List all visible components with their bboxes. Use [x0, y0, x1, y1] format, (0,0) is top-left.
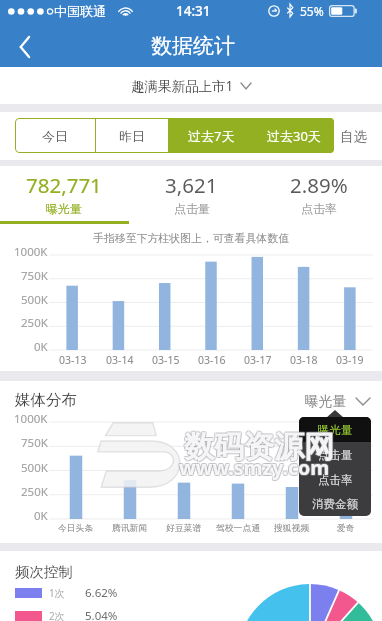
staticText: 03-16	[198, 353, 226, 367]
staticText: 点击量	[174, 201, 210, 216]
button[interactable]: 今日	[15, 118, 95, 153]
staticText: 1000K	[14, 411, 48, 427]
button[interactable]: 2.89%	[255, 166, 382, 221]
staticText: 爱奇	[337, 523, 355, 534]
staticText: 250K	[21, 484, 48, 500]
staticText: 6.62%	[85, 585, 118, 601]
staticText: 趣满果新品上市1	[131, 77, 234, 95]
staticText: 曝光量	[318, 423, 353, 437]
staticText: 数码资源网	[185, 428, 335, 466]
staticText: 3,621	[165, 171, 218, 199]
staticText: www.smzy.com	[178, 454, 329, 481]
staticText: 0K	[34, 508, 48, 524]
button[interactable]: 自选	[340, 112, 367, 160]
staticText: 03-15	[152, 353, 180, 367]
button[interactable]: 过去7天	[169, 118, 253, 153]
staticText: www.smzy.com	[180, 455, 331, 482]
staticText: 数码资源网	[184, 428, 334, 466]
staticText: 2.89%	[290, 171, 348, 199]
button[interactable]: 点击率	[299, 467, 371, 492]
staticText: 782,771	[26, 171, 102, 199]
staticText: 03-14	[106, 353, 134, 367]
button[interactable]: 过去30天	[254, 118, 334, 153]
staticText: 驾校一点通	[216, 523, 260, 534]
staticText: www.smzy.com	[179, 454, 330, 481]
staticText: 14:31	[176, 2, 211, 20]
staticText: 频次控制	[15, 563, 73, 581]
staticText: www.smzy.com	[180, 454, 331, 481]
staticText: 数码资源网	[184, 429, 334, 467]
button[interactable]: 782,771	[0, 166, 128, 221]
staticText: 曝光量	[46, 201, 82, 216]
staticText: 腾讯新闻	[112, 523, 148, 534]
staticText: 手指移至下方柱状图上，可查看具体数值	[0, 232, 382, 246]
staticText: 数码资源网	[183, 428, 333, 466]
staticText: 5.04%	[85, 608, 118, 621]
staticText: 点击率	[301, 201, 337, 216]
staticText: 点击量	[318, 448, 353, 462]
staticText: www.smzy.com	[180, 453, 331, 480]
staticText: 数码资源网	[185, 429, 335, 467]
staticText: 03-17	[244, 353, 272, 367]
staticText: www.smzy.com	[178, 453, 329, 480]
staticText: 搜狐视频	[274, 523, 310, 534]
staticText: 好豆菜谱	[166, 523, 202, 534]
staticText: 数码资源网	[185, 427, 335, 465]
staticText: www.smzy.com	[178, 455, 329, 482]
staticText: www.smzy.com	[179, 453, 330, 480]
staticText: 500K	[21, 292, 48, 308]
staticText: 今日	[42, 128, 68, 144]
staticText: 2次	[49, 609, 65, 621]
button[interactable]: 点击量	[299, 442, 371, 467]
button[interactable]: 趣满果新品上市1	[123, 73, 259, 99]
staticText: 数码资源网	[184, 427, 334, 465]
staticText: 过去7天	[188, 127, 235, 145]
staticText: 03-19	[336, 353, 364, 367]
staticText: 中国联通	[54, 3, 106, 19]
button[interactable]: 3,621	[128, 166, 255, 221]
button[interactable]: 消费金额	[299, 492, 371, 516]
staticText: www.smzy.com	[179, 455, 330, 482]
staticText: 消费金额	[312, 497, 358, 511]
staticText: 过去30天	[267, 127, 321, 145]
staticText: 点击率	[318, 473, 353, 487]
button[interactable]: Back	[0, 27, 48, 67]
button[interactable]: 曝光量	[299, 417, 371, 442]
staticText: 750K	[21, 435, 48, 451]
staticText: 500K	[21, 460, 48, 476]
staticText: 数码资源网	[183, 427, 333, 465]
staticText: 今日头条	[58, 523, 94, 534]
staticText: 0K	[34, 339, 48, 355]
staticText: 数据统计	[151, 33, 235, 59]
staticText: 1次	[49, 586, 65, 600]
staticText: 媒体分布	[15, 390, 77, 410]
staticText: 03-13	[59, 353, 87, 367]
staticText: 1000K	[14, 244, 48, 260]
button[interactable]: 昨日	[96, 118, 168, 153]
staticText: 曝光量	[305, 393, 347, 410]
staticText: 55%	[300, 3, 324, 19]
button[interactable]: 曝光量	[305, 390, 370, 413]
staticText: 750K	[21, 268, 48, 284]
staticText: 03-18	[290, 353, 318, 367]
staticText: 数码资源网	[183, 429, 333, 467]
staticText: 昨日	[119, 128, 145, 144]
staticText: 自选	[340, 128, 367, 145]
staticText: 250K	[21, 315, 48, 331]
